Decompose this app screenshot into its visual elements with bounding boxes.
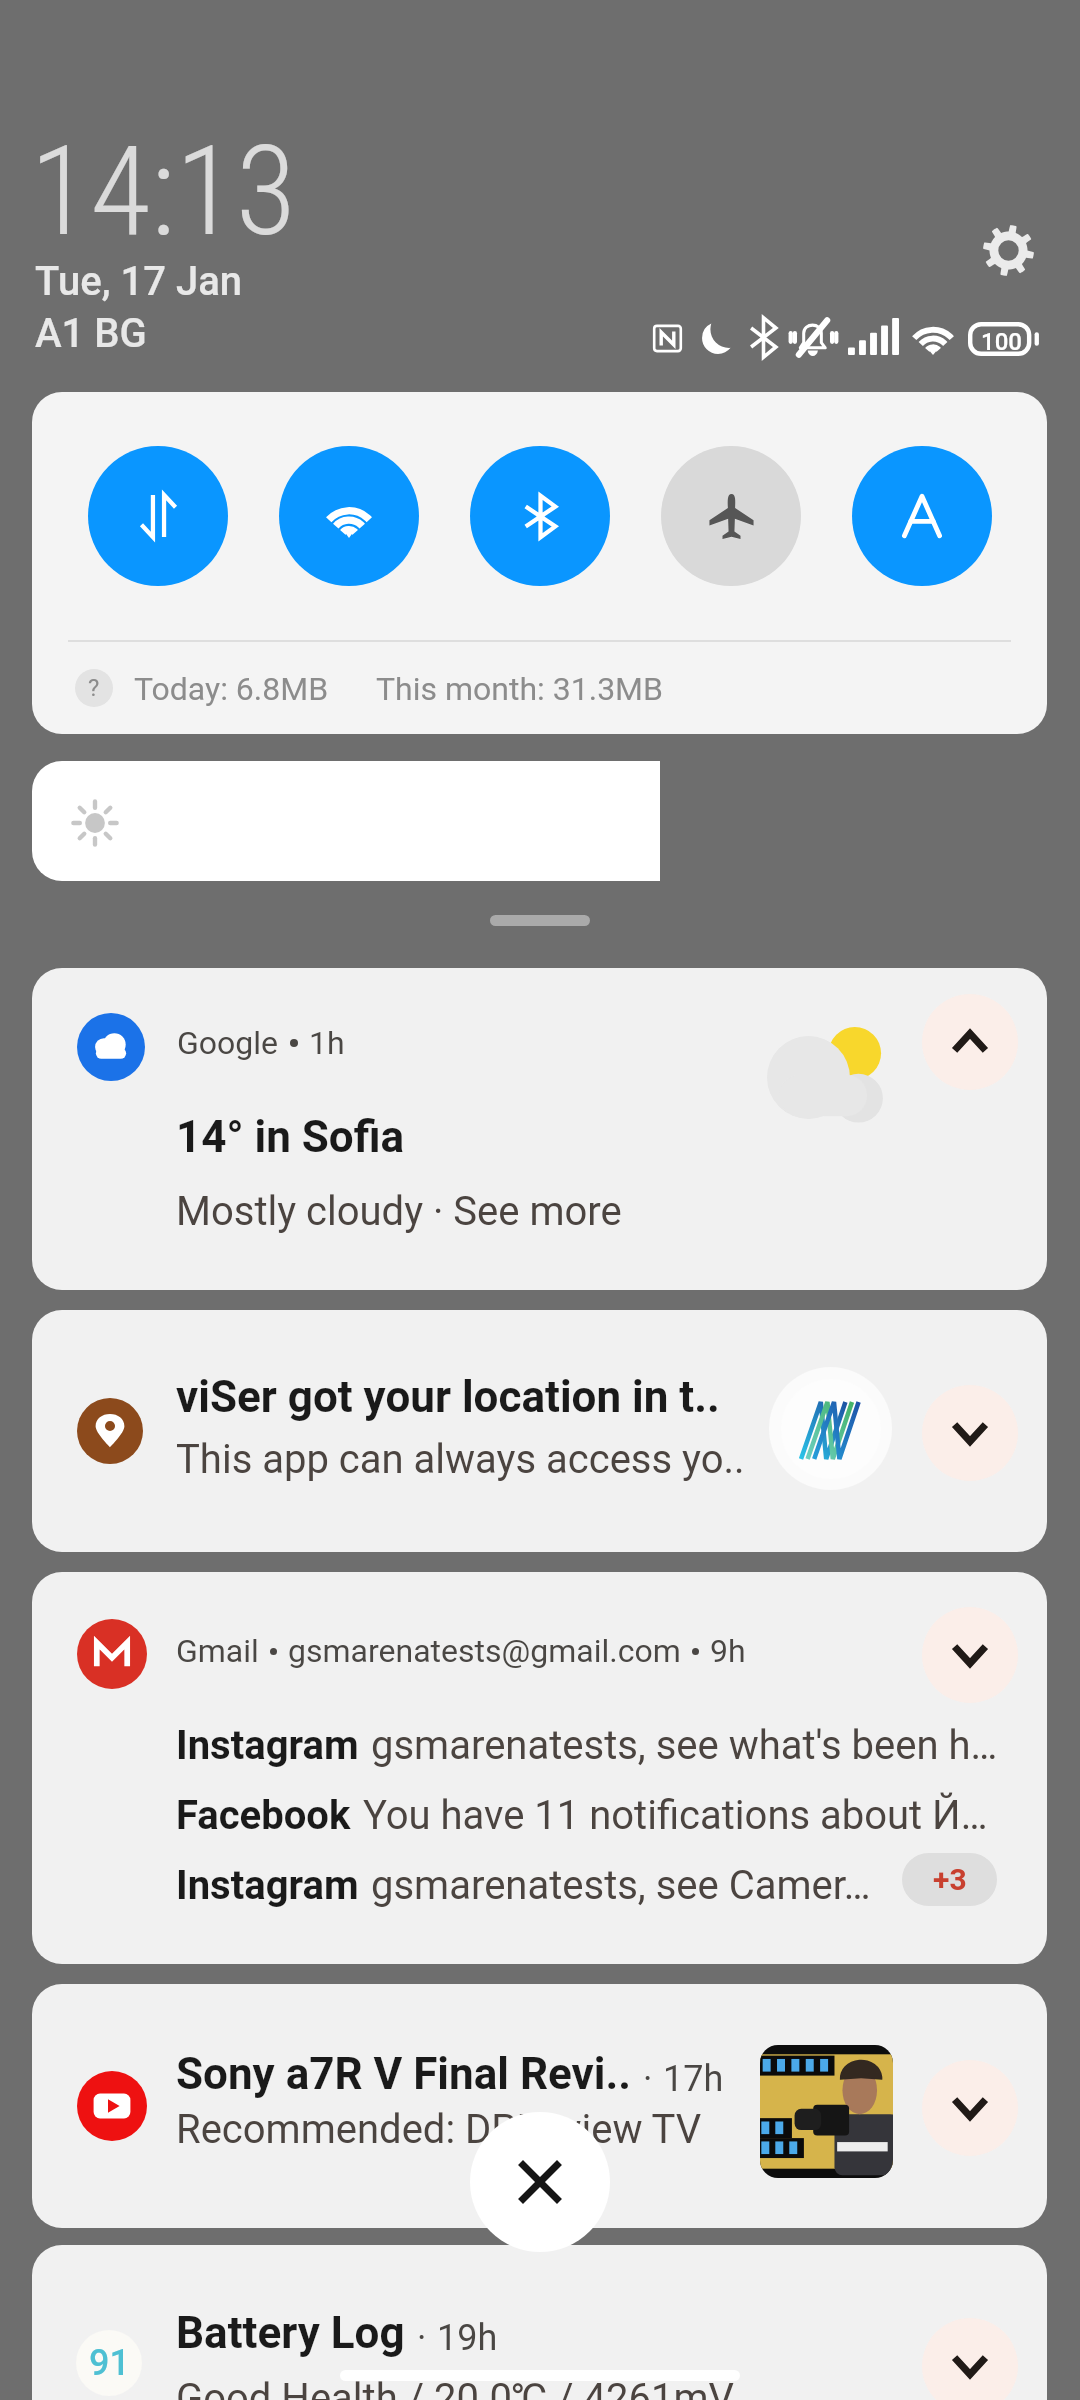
button[interactable]: Bluetooth bbox=[470, 446, 610, 586]
button[interactable]: viSer got your location in t.. bbox=[32, 1310, 1047, 1552]
staticText: +3 bbox=[933, 1862, 967, 1897]
staticText: gsmarenatests@gmail.com bbox=[288, 1632, 681, 1670]
staticText: Tue, 17 Jan bbox=[35, 258, 243, 305]
staticText: viSer got your location in t.. bbox=[176, 1371, 720, 1423]
staticText: 1h bbox=[309, 1024, 345, 1062]
button[interactable]: Gmail bbox=[32, 1572, 1047, 1964]
staticText: · bbox=[643, 2058, 653, 2100]
staticText: Today: 6.8MB bbox=[134, 670, 329, 708]
button[interactable]: Airplane mode bbox=[661, 446, 801, 586]
staticText: Facebook bbox=[176, 1792, 351, 1839]
button[interactable]: Expand bbox=[922, 2060, 1018, 2156]
staticText: Good Health / 20.0℃ / 4261mV bbox=[176, 2375, 734, 2400]
staticText: Sony a7R V Final Revi.. bbox=[176, 2048, 631, 2100]
staticText: This app can always access yo.. bbox=[176, 1436, 745, 1483]
staticText: This month: 31.3MB bbox=[376, 670, 663, 708]
staticText: 9h bbox=[710, 1632, 746, 1670]
button[interactable]: Brightness bbox=[32, 761, 660, 881]
button[interactable]: Expand bbox=[922, 1385, 1018, 1481]
staticText: Recommended: DPReview TV bbox=[176, 2106, 702, 2153]
staticText: Google bbox=[177, 1024, 279, 1062]
button[interactable]: Auto brightness bbox=[852, 446, 992, 586]
button[interactable]: +3 bbox=[902, 1853, 997, 1906]
staticText: 91 bbox=[89, 2342, 130, 2384]
button[interactable]: Expand bbox=[922, 2318, 1018, 2400]
button[interactable]: Sony a7R V Final Revi.. bbox=[32, 1984, 1047, 2228]
staticText: Instagram bbox=[176, 1862, 359, 1909]
staticText: Battery Log bbox=[176, 2307, 405, 2359]
button[interactable]: 91 bbox=[32, 2245, 1047, 2400]
button[interactable]: Collapse bbox=[922, 994, 1018, 1090]
staticText: Gmail bbox=[176, 1632, 259, 1670]
button[interactable]: Settings bbox=[964, 206, 1052, 294]
staticText: 14:13 bbox=[30, 119, 297, 264]
staticText: gsmarenatests, see what's been h… bbox=[371, 1722, 998, 1769]
staticText: A1 BG bbox=[35, 310, 147, 357]
staticText: 14° in Sofia bbox=[176, 1111, 405, 1163]
button[interactable]: Clear all notifications bbox=[470, 2112, 610, 2252]
button[interactable]: Mobile data bbox=[88, 446, 228, 586]
button[interactable]: Wi-Fi bbox=[279, 446, 419, 586]
staticText: · bbox=[417, 2317, 427, 2359]
staticText: 17h bbox=[663, 2058, 724, 2100]
staticText: gsmarenatests, see Camer… bbox=[371, 1862, 871, 1909]
staticText: You have 11 notifications about Й… bbox=[363, 1792, 988, 1839]
button[interactable]: Google bbox=[32, 968, 1047, 1290]
staticText: ? bbox=[88, 674, 100, 702]
staticText: Instagram bbox=[176, 1722, 359, 1769]
staticText: Mostly cloudy · See more bbox=[176, 1188, 622, 1235]
staticText: 19h bbox=[437, 2317, 498, 2359]
staticText: 100 bbox=[981, 328, 1022, 356]
button[interactable]: Expand bbox=[922, 1607, 1018, 1703]
